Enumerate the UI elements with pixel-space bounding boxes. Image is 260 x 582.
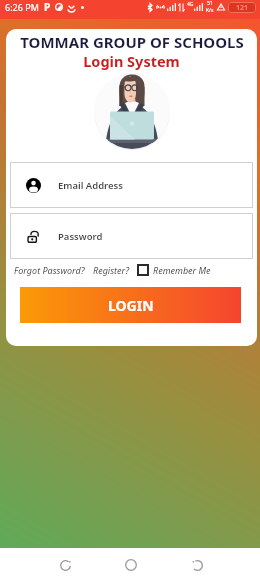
- button[interactable]: Forgot Password?: [14, 264, 85, 276]
- staticText: 6:26 PM: [5, 1, 39, 13]
- button[interactable]: Remember Me: [137, 264, 211, 276]
- staticText: TOMMAR GROUP OF SCHOOLS: [20, 32, 244, 52]
- staticText: 4G: [187, 1, 194, 8]
- staticText: Password: [58, 230, 103, 243]
- button[interactable]: Recents: [48, 548, 82, 582]
- staticText: Login System: [83, 51, 180, 71]
- button[interactable]: Register?: [93, 264, 130, 276]
- staticText: P: [44, 0, 51, 14]
- button[interactable]: Back: [180, 548, 214, 582]
- button[interactable]: Password: [10, 213, 253, 259]
- staticText: Email Address: [58, 179, 123, 192]
- staticText: LOGIN: [108, 296, 154, 315]
- staticText: 121: [236, 3, 249, 13]
- staticText: 51: [207, 0, 213, 7]
- staticText: Remember Me: [153, 264, 211, 276]
- staticText: K/s: [206, 7, 214, 14]
- button[interactable]: LOGIN: [20, 287, 241, 323]
- button[interactable]: Email Address: [10, 162, 253, 208]
- button[interactable]: Home: [114, 548, 148, 582]
